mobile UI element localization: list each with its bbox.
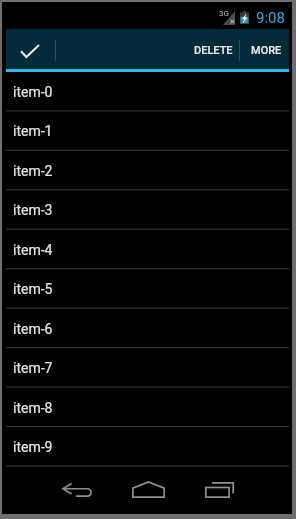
staticText: item-7	[13, 360, 53, 376]
button[interactable]: item-2	[6, 151, 289, 190]
staticText: item-8	[13, 400, 53, 416]
staticText: MORE	[251, 44, 282, 57]
button[interactable]: item-7	[6, 348, 289, 387]
button[interactable]: item-1	[6, 111, 289, 150]
staticText: 9:08	[256, 9, 285, 27]
button[interactable]: item-4	[6, 230, 289, 269]
staticText: 3G	[219, 9, 229, 18]
staticText: item-6	[13, 321, 53, 337]
button[interactable]: DELETE	[184, 29, 239, 72]
button[interactable]: item-5	[6, 269, 289, 308]
button[interactable]: Back	[44, 467, 114, 514]
button[interactable]: item-9	[6, 427, 289, 466]
staticText: item-9	[13, 439, 53, 455]
button[interactable]: item-6	[6, 309, 289, 348]
button[interactable]: Home	[116, 467, 186, 514]
staticText: item-3	[13, 202, 53, 218]
button[interactable]: Done	[6, 29, 55, 72]
button[interactable]: item-3	[6, 190, 289, 229]
button[interactable]: item-8	[6, 388, 289, 427]
button[interactable]: MORE	[240, 29, 289, 72]
button[interactable]: Recents	[188, 467, 258, 514]
staticText: item-5	[13, 281, 53, 297]
staticText: DELETE	[194, 44, 233, 57]
staticText: item-4	[13, 242, 53, 258]
staticText: item-2	[13, 163, 53, 179]
staticText: item-0	[13, 84, 53, 100]
staticText: item-1	[13, 123, 53, 139]
button[interactable]: item-0	[6, 72, 289, 111]
